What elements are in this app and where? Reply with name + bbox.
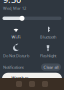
staticText: Clear all	[43, 64, 58, 70]
staticText: Weather	[11, 75, 28, 81]
staticText: Bluetooth	[40, 34, 56, 40]
button[interactable]: Weather	[2, 73, 62, 89]
button[interactable]: Clear all	[41, 63, 61, 71]
staticText: Do Not Disturb	[3, 53, 29, 58]
button[interactable]: Do Not Disturb	[0, 43, 32, 60]
staticText: Mostly Cloudy 68°	[11, 81, 44, 86]
button[interactable]: Flashlight	[32, 43, 64, 60]
staticText: Flashlight	[40, 53, 56, 58]
button[interactable]: Bluetooth	[32, 24, 64, 42]
staticText: Wed, Mar 12	[3, 5, 26, 11]
staticText: Wi-Fi	[11, 34, 20, 40]
staticText: Notifications	[3, 64, 24, 70]
button[interactable]: Wi-Fi	[0, 24, 32, 42]
staticText: 9:30	[3, 0, 21, 5]
